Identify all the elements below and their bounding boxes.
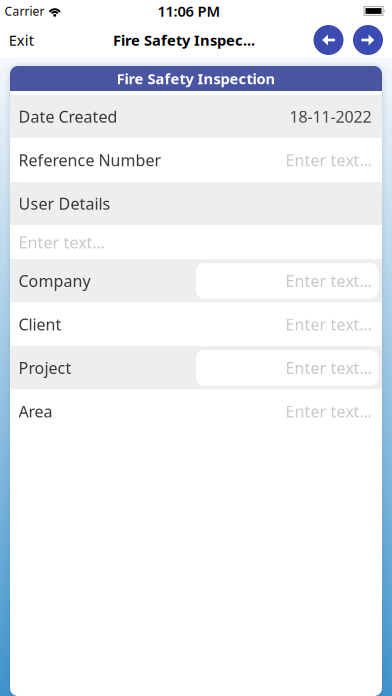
staticText: Enter text... xyxy=(285,401,371,422)
button[interactable]: Area xyxy=(10,390,382,433)
staticText: Fire Safety Inspection xyxy=(116,69,275,88)
staticText: Fire Safety Inspec... xyxy=(113,30,255,50)
staticText: Reference Number xyxy=(18,149,161,171)
staticText: Company xyxy=(18,270,90,291)
button[interactable]: Next xyxy=(353,25,383,55)
staticText: Project xyxy=(18,357,71,378)
staticText: Enter text... xyxy=(285,270,371,291)
staticText: 18-11-2022 xyxy=(289,106,371,127)
button[interactable]: Client xyxy=(10,303,382,346)
button[interactable]: Enter text... xyxy=(196,350,378,386)
staticText: User Details xyxy=(18,193,110,214)
staticText: Date Created xyxy=(18,106,117,127)
button[interactable]: Reference Number xyxy=(10,138,382,182)
staticText: Carrier xyxy=(4,3,44,19)
button[interactable]: Exit xyxy=(9,30,34,50)
staticText: Enter text... xyxy=(285,314,371,335)
button[interactable]: Date Created xyxy=(10,95,382,138)
button[interactable]: Enter text... xyxy=(196,263,378,299)
staticText: Area xyxy=(18,401,52,422)
staticText: Exit xyxy=(9,30,34,50)
staticText: Enter text... xyxy=(18,232,104,253)
staticText: Enter text... xyxy=(285,357,371,378)
staticText: 11:06 PM xyxy=(157,1,220,21)
button[interactable]: Enter text... xyxy=(10,225,382,259)
staticText: Enter text... xyxy=(285,149,371,171)
staticText: Client xyxy=(18,314,61,335)
button[interactable]: Previous xyxy=(313,25,343,55)
